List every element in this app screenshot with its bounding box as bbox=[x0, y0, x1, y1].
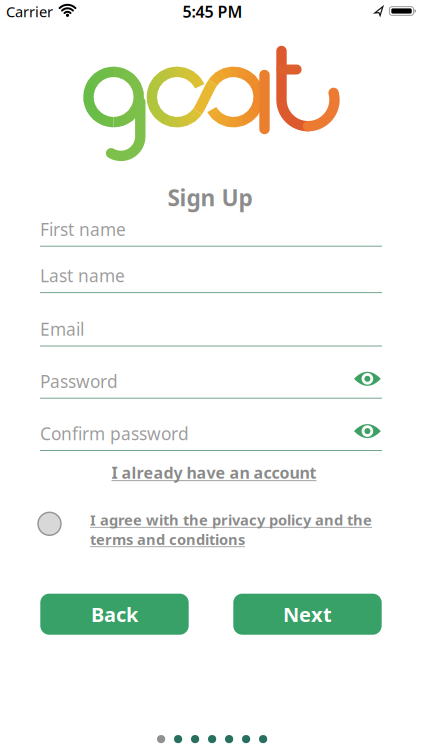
button[interactable]: I already have an account bbox=[111, 462, 316, 483]
button[interactable]: Show password bbox=[353, 370, 381, 388]
button[interactable]: I agree with the privacy policy and the … bbox=[90, 510, 410, 549]
staticText: 5:45 PM bbox=[182, 1, 242, 22]
staticText: Confirm password bbox=[40, 422, 189, 445]
staticText: Sign Up bbox=[167, 182, 252, 212]
staticText: Next bbox=[283, 601, 332, 627]
staticText: Carrier bbox=[6, 2, 53, 21]
staticText: Back bbox=[91, 601, 138, 627]
button[interactable]: Back bbox=[40, 594, 189, 635]
button[interactable]: I agree with the privacy policy and the … bbox=[38, 512, 61, 535]
staticText: I already have an account bbox=[111, 462, 316, 483]
staticText: I agree with the privacy policy and the … bbox=[90, 510, 372, 549]
staticText: Email bbox=[40, 317, 84, 340]
button[interactable]: Show password bbox=[353, 422, 381, 440]
staticText: First name bbox=[40, 218, 126, 241]
staticText: Password bbox=[40, 370, 118, 393]
staticText: Last name bbox=[40, 264, 125, 287]
button[interactable]: Next bbox=[233, 594, 382, 635]
